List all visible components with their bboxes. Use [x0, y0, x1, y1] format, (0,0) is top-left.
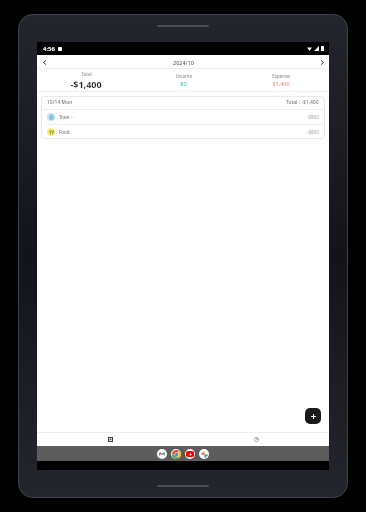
- button[interactable]: Gmail: [157, 449, 167, 459]
- staticText: Income: [176, 73, 192, 79]
- button[interactable]: YouTube: [185, 449, 195, 459]
- button[interactable]: 10/14 Mon: [41, 96, 325, 109]
- staticText: $0: [180, 80, 187, 87]
- button[interactable]: Income: [135, 69, 232, 91]
- button[interactable]: Add entry: [305, 408, 321, 424]
- staticText: 4:56: [43, 45, 55, 53]
- staticText: -$1,400: [70, 78, 102, 90]
- button[interactable]: Chrome: [171, 449, 181, 459]
- button[interactable]: Food: [41, 125, 325, 139]
- button[interactable]: Chart view: [183, 433, 329, 446]
- button[interactable]: Total: [37, 69, 135, 91]
- button[interactable]: List view: [37, 433, 183, 446]
- staticText: Train · ·: [59, 114, 75, 120]
- staticText: Expense: [272, 73, 290, 79]
- button[interactable]: Expense: [232, 69, 329, 91]
- staticText: 2024/10: [173, 59, 194, 66]
- button[interactable]: Next month: [315, 55, 329, 69]
- staticText: Total : -$1,400: [286, 99, 319, 106]
- button[interactable]: Train · ·: [41, 110, 325, 124]
- staticText: 10/14 Mon: [47, 99, 73, 106]
- button[interactable]: Photos: [199, 449, 209, 459]
- staticText: -$600: [307, 129, 319, 135]
- button[interactable]: Previous month: [37, 55, 51, 69]
- staticText: Total: [81, 71, 92, 77]
- staticText: $1,400: [272, 80, 290, 87]
- staticText: -$800: [307, 114, 319, 120]
- staticText: Food: [59, 129, 70, 135]
